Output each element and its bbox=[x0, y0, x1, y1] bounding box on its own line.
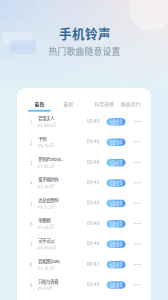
staticText: 30.1万 bbox=[44, 163, 55, 169]
staticText: 设铃声 bbox=[110, 159, 122, 166]
staticText: 罗刹(Follow... bbox=[38, 156, 63, 162]
staticText: 手机铃声 bbox=[59, 24, 111, 42]
staticText: 予你 bbox=[38, 135, 46, 142]
staticText: 20.8万 bbox=[44, 183, 55, 189]
staticText: 00:40 bbox=[87, 159, 100, 165]
button[interactable]: 9 bbox=[17, 275, 151, 295]
button[interactable]: 4 bbox=[17, 173, 151, 193]
staticText: 抖音热榜 bbox=[94, 100, 114, 107]
button[interactable]: 1 bbox=[17, 112, 151, 132]
staticText: 31.2万 bbox=[44, 204, 55, 210]
staticText: 可不可以 bbox=[38, 237, 54, 244]
staticText: 网络流行 bbox=[120, 100, 140, 107]
staticText: 若相思(Live) bbox=[38, 258, 59, 264]
staticText: 只给与青春 bbox=[38, 278, 58, 285]
staticText: 3 bbox=[30, 160, 33, 166]
button[interactable]: 抖音热榜 bbox=[90, 98, 118, 120]
staticText: 最新 bbox=[63, 100, 73, 107]
staticText: 5.9万 bbox=[44, 285, 53, 291]
staticText: 20.1万 bbox=[44, 265, 55, 271]
staticText: 还是会想你 bbox=[38, 197, 58, 203]
staticText: 设铃声 bbox=[110, 180, 122, 186]
staticText: 若雪夫人 bbox=[38, 115, 54, 121]
button[interactable]: 7 bbox=[17, 234, 151, 255]
button[interactable]: 3 bbox=[17, 153, 151, 173]
button[interactable]: 8 bbox=[17, 255, 151, 275]
button[interactable]: 最热 bbox=[25, 98, 53, 120]
staticText: 设铃声 bbox=[110, 119, 122, 125]
staticText: 00:41 bbox=[87, 261, 100, 267]
staticText: 设铃声 bbox=[110, 221, 122, 227]
staticText: 6 bbox=[30, 221, 33, 227]
staticText: 热门歌曲随意设置 bbox=[48, 45, 120, 57]
staticText: 9 bbox=[30, 283, 33, 289]
button[interactable]: 5 bbox=[17, 193, 151, 214]
staticText: 冬眠梢 bbox=[38, 217, 50, 223]
staticText: 设铃声 bbox=[110, 261, 122, 268]
staticText: 7 bbox=[30, 242, 33, 248]
button[interactable]: 2 bbox=[17, 132, 151, 153]
staticText: 设铃声 bbox=[110, 200, 122, 206]
button[interactable]: 网络流行 bbox=[116, 98, 144, 120]
staticText: 2 bbox=[30, 140, 33, 146]
staticText: 5 bbox=[30, 201, 33, 207]
staticText: 823.4万 bbox=[44, 122, 57, 128]
staticText: 设铃声 bbox=[110, 139, 122, 145]
staticText: 爱不够的你 bbox=[38, 176, 58, 183]
staticText: 00:40 bbox=[87, 240, 100, 247]
staticText: 79.3万 bbox=[44, 143, 55, 148]
staticText: 00:40 bbox=[87, 200, 100, 206]
staticText: 00:40 bbox=[87, 281, 100, 287]
staticText: 00:40 bbox=[87, 138, 100, 145]
staticText: 设铃声 bbox=[110, 241, 122, 247]
button[interactable]: 6 bbox=[17, 214, 151, 234]
staticText: 8 bbox=[30, 262, 33, 268]
staticText: 454.8万 bbox=[44, 245, 57, 250]
staticText: 设铃声 bbox=[110, 282, 122, 288]
staticText: 最热 bbox=[34, 101, 44, 107]
button[interactable]: 最新 bbox=[54, 98, 82, 120]
staticText: 18.5万 bbox=[44, 224, 55, 230]
staticText: 00:40 bbox=[87, 220, 100, 226]
staticText: 00:40 bbox=[87, 118, 100, 124]
staticText: 00:43 bbox=[87, 179, 100, 185]
staticText: 4 bbox=[30, 181, 33, 187]
staticText: 1 bbox=[30, 119, 33, 125]
